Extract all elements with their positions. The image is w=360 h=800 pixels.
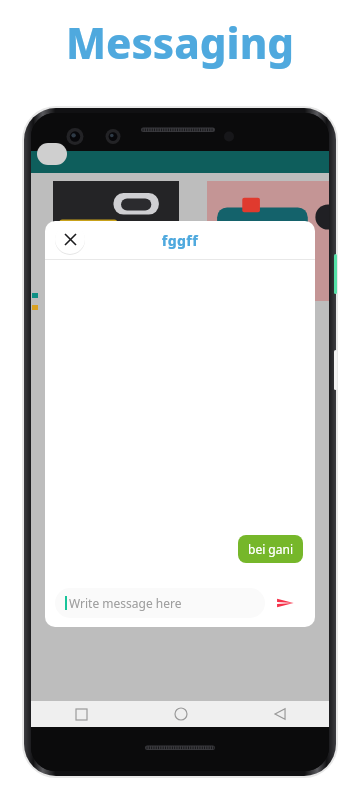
button[interactable]: Recents <box>31 701 131 727</box>
staticText: bei gani <box>248 541 293 557</box>
button[interactable]: bei gani <box>238 535 303 563</box>
button[interactable]: Back <box>230 701 329 727</box>
staticText: Write message here <box>69 595 182 611</box>
button[interactable]: Close <box>55 224 85 254</box>
staticText: fggff <box>45 231 315 250</box>
button[interactable]: Write message here <box>55 588 265 618</box>
button[interactable]: Send <box>265 586 305 620</box>
button[interactable]: Home <box>131 701 230 727</box>
button[interactable] <box>53 181 179 301</box>
button[interactable] <box>207 181 329 301</box>
staticText: Messaging <box>0 14 360 71</box>
